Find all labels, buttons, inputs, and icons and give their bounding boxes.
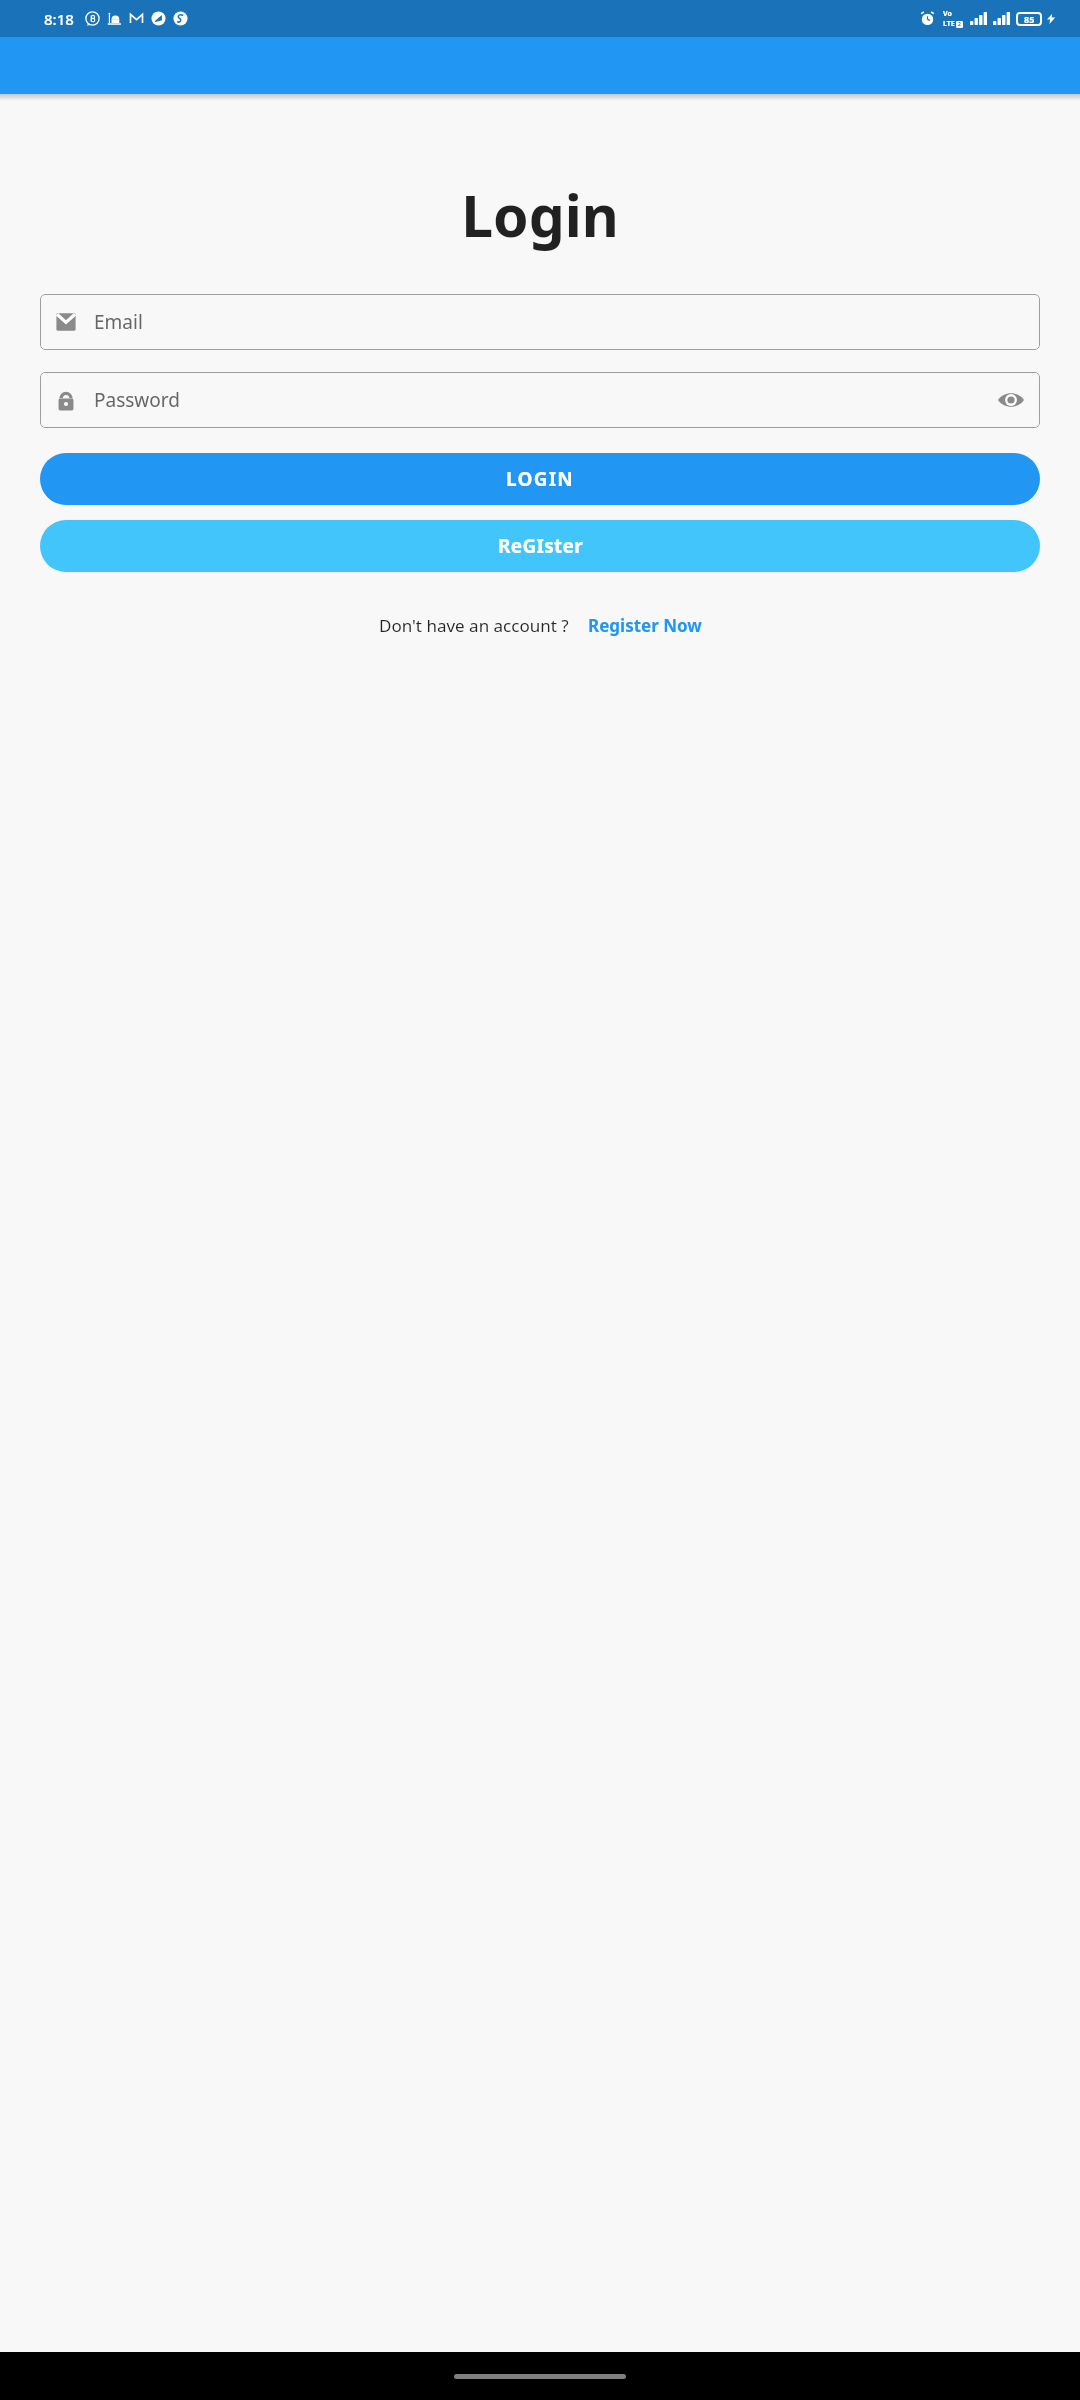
- staticText: ReGIster: [498, 533, 583, 559]
- staticText: 8:18: [44, 9, 74, 29]
- staticText: Register Now: [588, 614, 702, 637]
- staticText: 2: [958, 21, 961, 28]
- button[interactable]: Email: [40, 294, 1040, 350]
- staticText: LTE: [943, 19, 955, 29]
- staticText: Vo: [943, 9, 952, 19]
- button[interactable]: Show password: [996, 385, 1026, 415]
- button[interactable]: Password: [40, 372, 1040, 428]
- button[interactable]: LOGIN: [40, 453, 1040, 505]
- staticText: Email: [94, 309, 143, 335]
- staticText: LOGIN: [506, 466, 574, 492]
- staticText: Don't have an account ?: [379, 614, 569, 637]
- staticText: Login: [461, 176, 619, 254]
- button[interactable]: Register Now: [588, 614, 702, 637]
- staticText: 85: [1024, 13, 1035, 25]
- staticText: Password: [94, 387, 180, 413]
- button[interactable]: ReGIster: [40, 520, 1040, 572]
